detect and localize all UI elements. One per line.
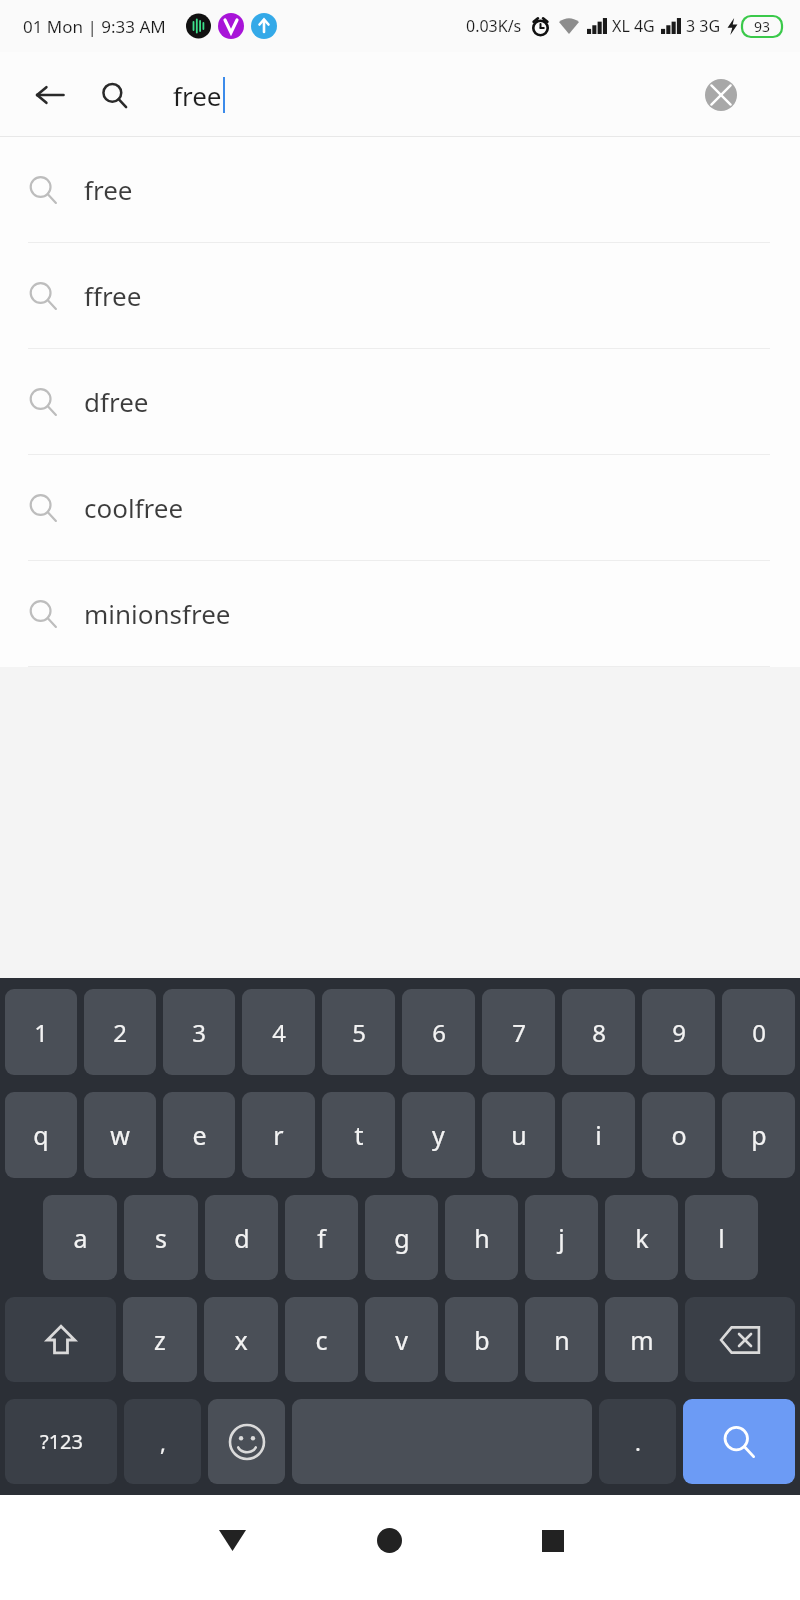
button[interactable]: r <box>242 1092 315 1178</box>
button[interactable]: . <box>599 1399 676 1484</box>
button[interactable]: w <box>84 1092 156 1178</box>
staticText: 6 <box>432 1016 446 1049</box>
button[interactable]: i <box>562 1092 635 1178</box>
button[interactable]: e <box>163 1092 235 1178</box>
button[interactable]: minionsfree <box>0 561 800 666</box>
staticText: coolfree <box>84 490 184 525</box>
staticText: 0.03K/s <box>466 15 522 37</box>
button[interactable]: g <box>365 1195 438 1280</box>
button[interactable]: p <box>722 1092 795 1178</box>
button[interactable]: Home <box>362 1513 417 1568</box>
staticText: t <box>354 1118 364 1152</box>
button[interactable]: a <box>43 1195 117 1280</box>
button[interactable]: s <box>124 1195 198 1280</box>
button[interactable]: dfree <box>0 349 800 454</box>
staticText: m <box>630 1323 654 1357</box>
button[interactable]: Back <box>22 67 78 123</box>
staticText: 2 <box>113 1016 127 1049</box>
button[interactable]: free <box>0 137 800 242</box>
staticText: free <box>84 172 133 207</box>
button[interactable]: Search <box>86 67 142 123</box>
staticText: i <box>595 1118 602 1152</box>
button[interactable]: z <box>123 1297 197 1382</box>
staticText: 3 <box>192 1016 206 1049</box>
button[interactable]: ?123 <box>5 1399 117 1484</box>
staticText: v <box>395 1323 408 1357</box>
button[interactable]: v <box>365 1297 438 1382</box>
button[interactable]: c <box>285 1297 358 1382</box>
button[interactable]: d <box>205 1195 278 1280</box>
button[interactable]: 8 <box>562 989 635 1075</box>
button[interactable]: m <box>605 1297 678 1382</box>
button[interactable]: 4 <box>242 989 315 1075</box>
staticText: ffree <box>84 278 142 313</box>
button[interactable]: 1 <box>5 989 77 1075</box>
staticText: g <box>394 1221 410 1255</box>
staticText: , <box>160 1427 166 1457</box>
staticText: r <box>273 1118 284 1152</box>
button[interactable]: u <box>482 1092 555 1178</box>
button[interactable]: l <box>685 1195 758 1280</box>
staticText: x <box>234 1323 248 1357</box>
button[interactable]: 3 <box>163 989 235 1075</box>
staticText: k <box>635 1221 649 1255</box>
button[interactable]: Search <box>683 1399 795 1484</box>
staticText: 5 <box>352 1016 366 1049</box>
button[interactable]: Recents <box>525 1513 580 1568</box>
staticText: 7 <box>512 1016 526 1049</box>
staticText: 8 <box>592 1016 606 1049</box>
button[interactable]: ffree <box>0 243 800 348</box>
button[interactable]: 9 <box>642 989 715 1075</box>
staticText: dfree <box>84 384 149 419</box>
button[interactable]: 6 <box>402 989 475 1075</box>
staticText: 3 3G <box>686 15 721 37</box>
button[interactable]: n <box>525 1297 598 1382</box>
button[interactable]: k <box>605 1195 678 1280</box>
button[interactable]: Clear <box>697 71 745 119</box>
staticText: ?123 <box>40 1428 83 1455</box>
staticText: . <box>635 1427 641 1457</box>
staticText: p <box>751 1118 767 1152</box>
staticText: n <box>554 1323 570 1357</box>
button[interactable]: h <box>445 1195 518 1280</box>
staticText: w <box>110 1118 130 1152</box>
staticText: s <box>155 1221 167 1255</box>
button[interactable]: Shift <box>5 1297 116 1382</box>
button[interactable]: Emoji <box>208 1399 285 1484</box>
button[interactable]: 0 <box>722 989 795 1075</box>
staticText: 9 <box>672 1016 686 1049</box>
staticText: e <box>192 1118 207 1152</box>
staticText: 01 Mon | 9:33 AM <box>23 15 166 38</box>
staticText: u <box>511 1118 527 1152</box>
staticText: y <box>432 1118 445 1152</box>
staticText: 93 <box>754 17 771 36</box>
button[interactable]: x <box>204 1297 278 1382</box>
staticText: 4 <box>272 1016 286 1049</box>
staticText: f <box>317 1221 326 1255</box>
button[interactable]: y <box>402 1092 475 1178</box>
button[interactable]: t <box>322 1092 395 1178</box>
staticText: o <box>671 1118 687 1152</box>
button[interactable]: q <box>5 1092 77 1178</box>
staticText: free <box>173 78 222 113</box>
button[interactable]: 2 <box>84 989 156 1075</box>
button[interactable]: j <box>525 1195 598 1280</box>
button[interactable]: Backspace <box>685 1297 795 1382</box>
staticText: a <box>73 1221 88 1255</box>
staticText: q <box>33 1118 49 1152</box>
staticText: c <box>315 1323 328 1357</box>
button[interactable]: o <box>642 1092 715 1178</box>
button[interactable]: Hide keyboard <box>205 1513 260 1568</box>
staticText: d <box>234 1221 250 1255</box>
button[interactable]: , <box>124 1399 201 1484</box>
button[interactable]: coolfree <box>0 455 800 560</box>
staticText: l <box>718 1221 725 1255</box>
staticText: b <box>474 1323 490 1357</box>
button[interactable]: 7 <box>482 989 555 1075</box>
button[interactable]: b <box>445 1297 518 1382</box>
button[interactable]: f <box>285 1195 358 1280</box>
button[interactable]: 5 <box>322 989 395 1075</box>
staticText: h <box>474 1221 490 1255</box>
staticText: j <box>558 1221 565 1255</box>
